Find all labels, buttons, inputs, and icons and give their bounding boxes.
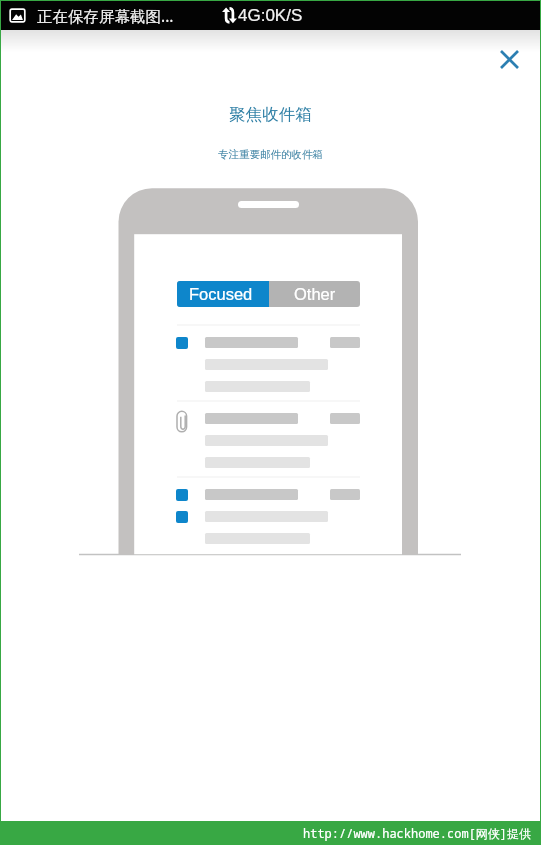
staticText: http://www.hackhome.com[网侠]提供: [303, 825, 532, 841]
button[interactable]: Focused: [175, 281, 267, 307]
button[interactable]: Other: [269, 281, 360, 307]
staticText: 正在保存屏幕截图...: [37, 5, 174, 26]
staticText: 聚焦收件箱: [1, 104, 540, 125]
button[interactable]: Close: [489, 39, 529, 79]
staticText: 专注重要邮件的收件箱: [1, 148, 540, 161]
staticText: Other: [294, 285, 336, 303]
staticText: Focused: [189, 285, 253, 303]
staticText: 4G:0K/S: [238, 6, 303, 25]
